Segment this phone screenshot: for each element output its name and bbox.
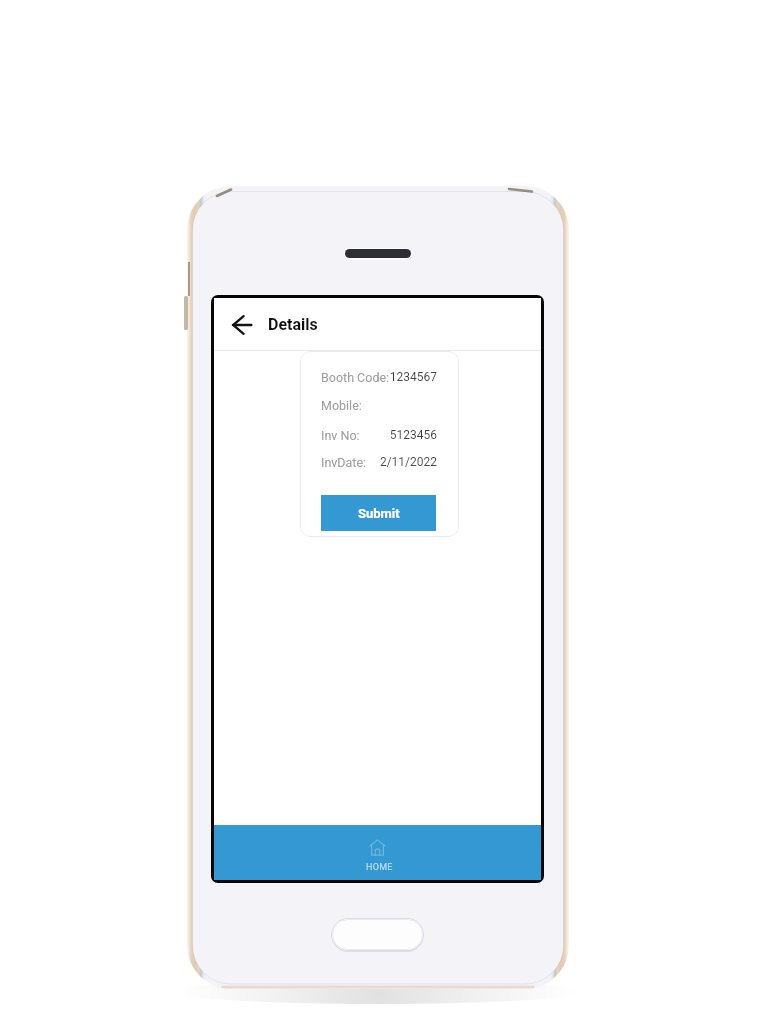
staticText: InvDate: <box>321 455 367 470</box>
staticText: Details <box>268 315 318 334</box>
staticText: 2/11/2022 <box>300 455 437 469</box>
button[interactable]: Back <box>229 312 255 338</box>
button[interactable]: Submit <box>321 495 436 531</box>
staticText: Inv No: <box>321 428 360 443</box>
staticText: 1234567 <box>300 370 437 384</box>
button[interactable]: HOME <box>214 825 541 880</box>
staticText: Submit <box>358 506 400 521</box>
staticText: HOME <box>366 862 393 873</box>
staticText: Mobile: <box>321 398 362 413</box>
staticText: Booth Code: <box>321 370 390 385</box>
staticText: 5123456 <box>300 428 437 442</box>
